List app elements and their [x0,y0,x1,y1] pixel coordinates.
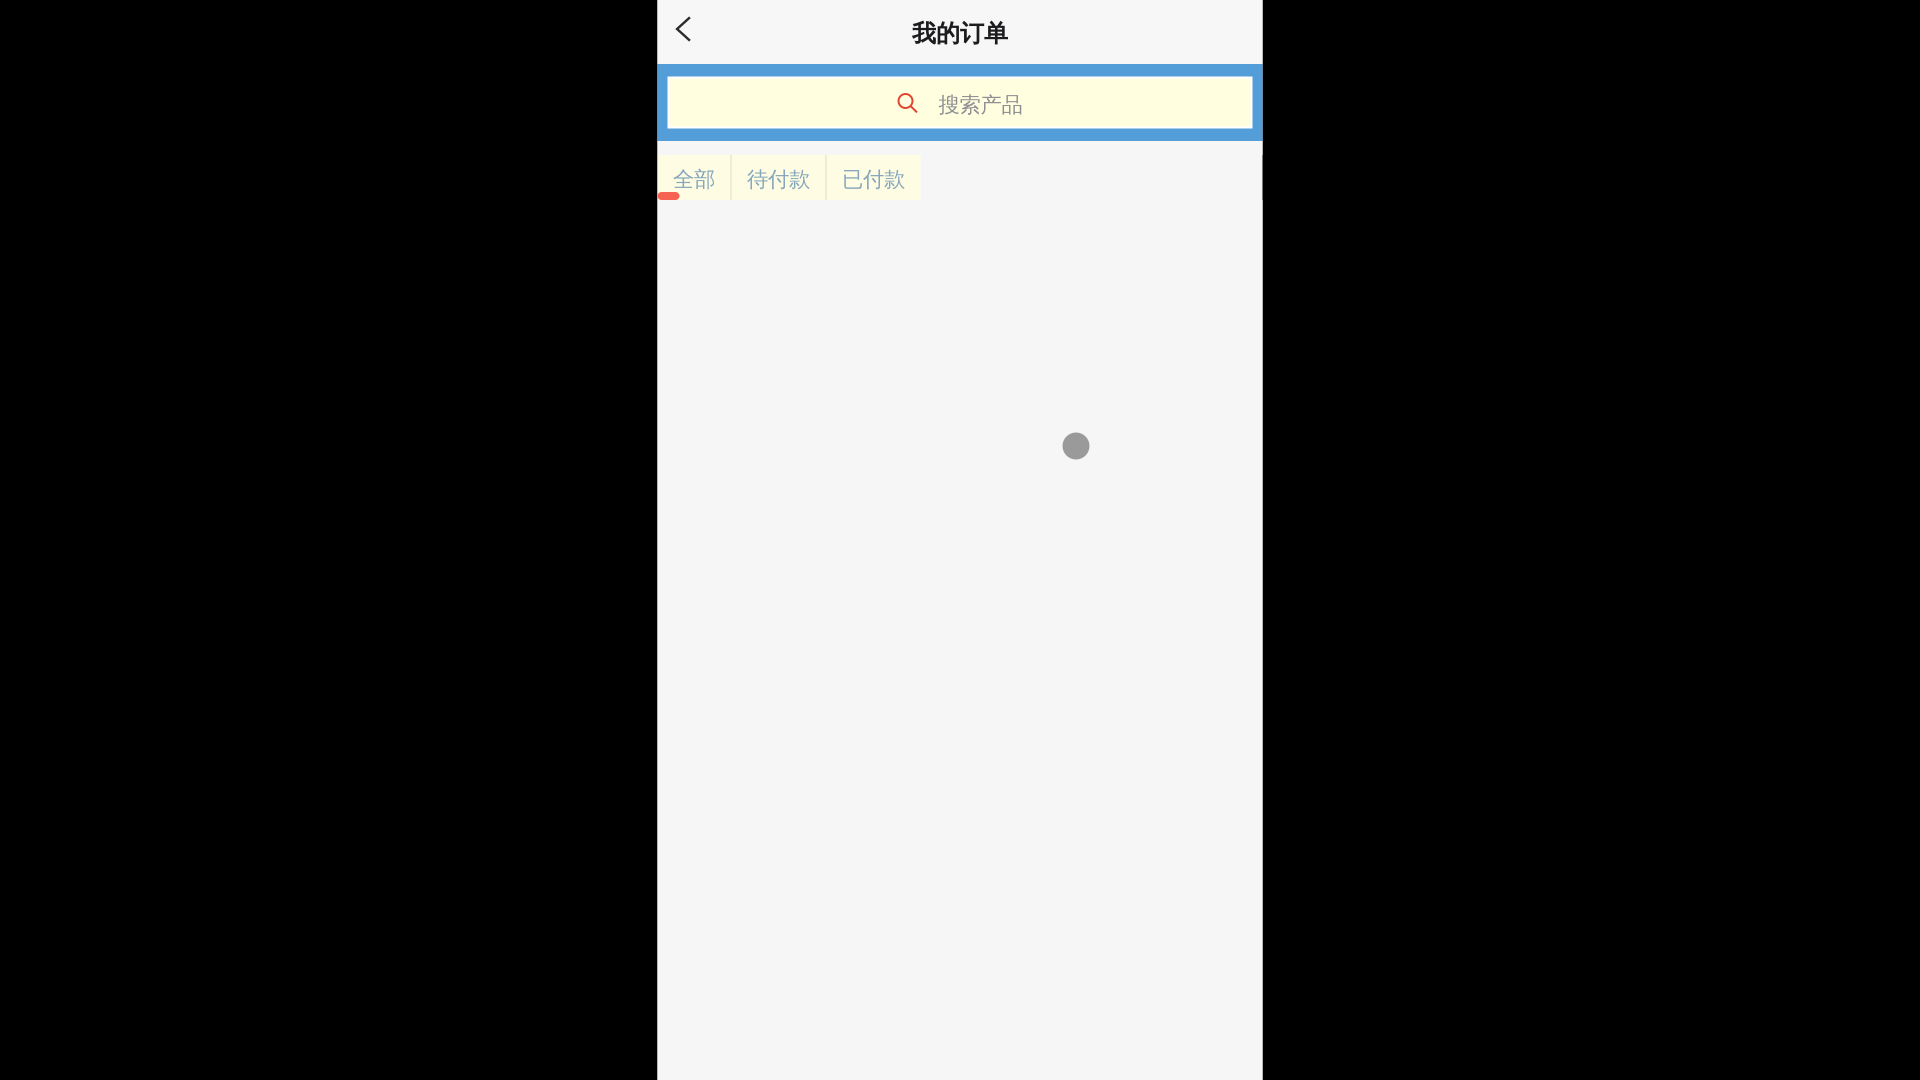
staticText: 已付款 [842,166,905,193]
button[interactable]: 已付款 [826,155,920,200]
button[interactable]: 返回 [657,3,709,61]
staticText: 我的订单 [912,19,1008,48]
button[interactable]: 全部 [657,155,730,200]
staticText: 搜索产品 [938,92,1022,118]
button[interactable]: 搜索产品 [657,64,1262,141]
staticText: 待付款 [747,166,810,193]
button[interactable]: 待付款 [731,155,825,200]
staticText: 全部 [673,166,715,193]
